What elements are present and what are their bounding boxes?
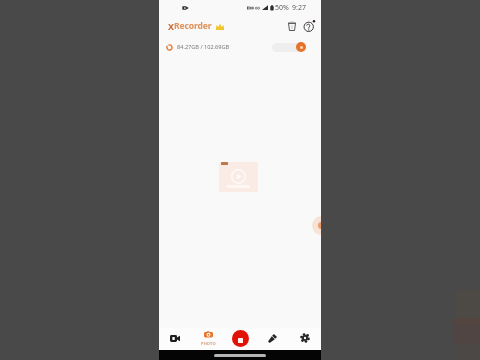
button[interactable]: Floating window	[272, 43, 301, 52]
staticText: PHOTO	[201, 341, 216, 346]
button[interactable]: X	[168, 20, 224, 32]
button[interactable]: Edit	[261, 328, 283, 350]
staticText: 84.27GB / 102.69GB	[177, 43, 230, 51]
button[interactable]: Videos	[164, 328, 186, 350]
button[interactable]: Settings	[294, 328, 316, 350]
button[interactable]: Delete	[286, 18, 298, 34]
button[interactable]: Floating recorder button	[312, 216, 321, 235]
button[interactable]: Photo	[197, 328, 219, 350]
staticText: 50%	[275, 3, 289, 12]
button[interactable]: Help	[303, 18, 316, 34]
staticText: 9:27	[292, 3, 306, 12]
staticText: Recorder	[174, 20, 212, 32]
button[interactable]: Stop recording	[229, 328, 251, 350]
staticText: X	[168, 20, 174, 32]
